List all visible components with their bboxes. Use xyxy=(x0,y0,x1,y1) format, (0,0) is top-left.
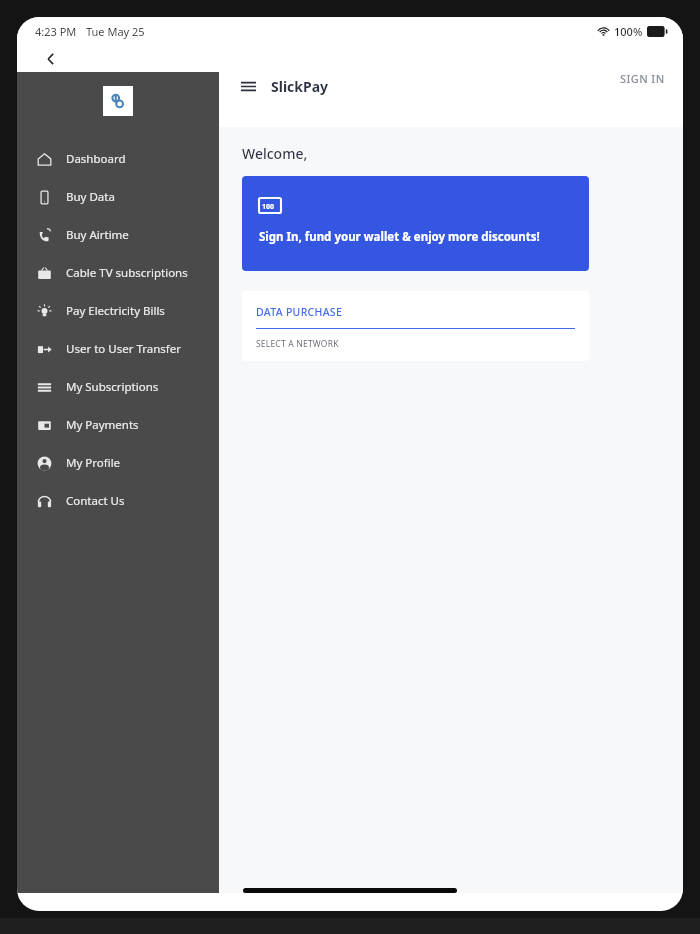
button[interactable]: My Profile xyxy=(17,444,219,482)
staticText: Pay Electricity Bills xyxy=(66,303,165,319)
button[interactable]: My Subscriptions xyxy=(17,368,219,406)
button[interactable]: My Payments xyxy=(17,406,219,444)
staticText: Cable TV subscriptions xyxy=(66,265,188,281)
staticText: Welcome, xyxy=(242,144,308,163)
button[interactable]: Buy Airtime xyxy=(17,216,219,254)
staticText: SIGN IN xyxy=(620,71,665,86)
staticText: DATA PURCHASE xyxy=(256,305,343,319)
button[interactable]: Pay Electricity Bills xyxy=(17,292,219,330)
staticText: 100 xyxy=(262,202,275,212)
staticText: 100% xyxy=(614,24,643,39)
button[interactable]: DATA PURCHASE xyxy=(242,291,589,361)
staticText: My Profile xyxy=(66,455,121,471)
staticText: SELECT A NETWORK xyxy=(256,338,339,350)
staticText: My Payments xyxy=(66,417,139,433)
staticText: Buy Data xyxy=(66,189,115,205)
staticText: Sign In, fund your wallet & enjoy more d… xyxy=(259,229,540,245)
button[interactable]: Open navigation menu xyxy=(237,75,329,97)
staticText: My Subscriptions xyxy=(66,379,159,395)
button[interactable]: Contact Us xyxy=(17,482,219,520)
staticText: Dashboard xyxy=(66,151,126,167)
staticText: Contact Us xyxy=(66,493,125,509)
button[interactable]: User to User Transfer xyxy=(17,330,219,368)
button[interactable]: SIGN IN xyxy=(602,63,683,94)
button[interactable]: Dashboard xyxy=(17,140,219,178)
button[interactable]: Cable TV subscriptions xyxy=(17,254,219,292)
staticText: User to User Transfer xyxy=(66,341,181,357)
button[interactable]: SlickPay logo xyxy=(103,86,133,116)
button[interactable]: Sign In, fund your wallet & enjoy more d… xyxy=(242,176,589,271)
other: Open navigation menu xyxy=(237,75,259,97)
button[interactable]: Back xyxy=(39,47,63,71)
button[interactable]: Buy Data xyxy=(17,178,219,216)
staticText: 4:23 PM xyxy=(35,24,77,39)
staticText: SlickPay xyxy=(271,77,329,96)
staticText: Buy Airtime xyxy=(66,227,129,243)
staticText: Tue May 25 xyxy=(86,24,145,39)
